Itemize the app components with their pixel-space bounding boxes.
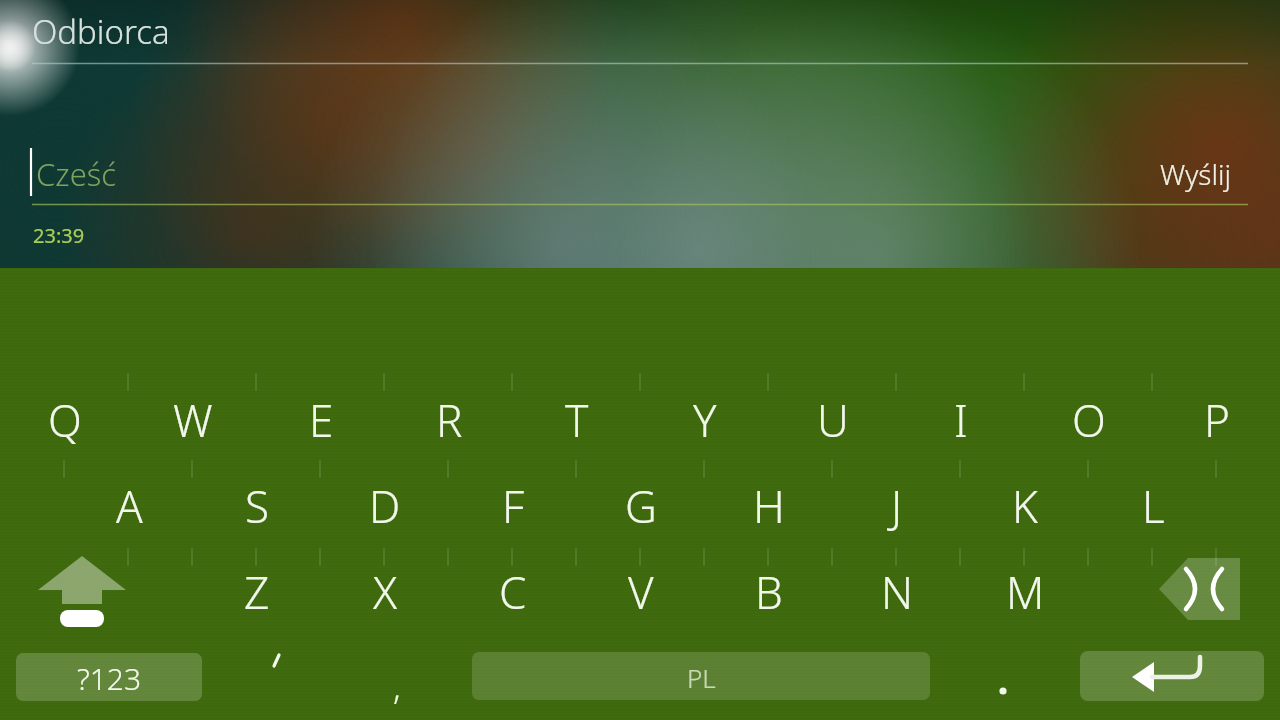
staticText: A: [116, 476, 143, 536]
button[interactable]: H: [705, 463, 833, 549]
staticText: E: [309, 390, 334, 450]
button[interactable]: Backspace: [1150, 550, 1260, 634]
staticText: L: [1142, 476, 1165, 536]
button[interactable]: W: [129, 377, 257, 463]
button[interactable]: Z: [193, 549, 321, 635]
staticText: K: [1012, 476, 1038, 536]
button[interactable]: Period: [960, 655, 1050, 711]
button[interactable]: N: [833, 549, 961, 635]
button[interactable]: V: [577, 549, 705, 635]
staticText: S: [245, 476, 270, 536]
button[interactable]: R: [385, 377, 513, 463]
button[interactable]: L: [1089, 463, 1217, 549]
staticText: O: [1072, 390, 1106, 450]
button[interactable]: O: [1025, 377, 1153, 463]
button[interactable]: C: [449, 549, 577, 635]
staticText: H: [753, 476, 785, 536]
button[interactable]: PL: [472, 652, 930, 702]
button[interactable]: T: [513, 377, 641, 463]
button[interactable]: B: [705, 549, 833, 635]
staticText: I: [954, 390, 968, 450]
staticText: D: [369, 476, 401, 536]
button[interactable]: M: [961, 549, 1089, 635]
staticText: M: [1006, 562, 1045, 622]
button[interactable]: A: [65, 463, 193, 549]
button[interactable]: Shift: [20, 550, 144, 634]
button[interactable]: P: [1153, 377, 1280, 463]
button[interactable]: J: [833, 463, 961, 549]
staticText: T: [565, 390, 589, 450]
staticText: X: [373, 562, 398, 622]
button[interactable]: ?123: [15, 652, 203, 704]
button[interactable]: Y: [641, 377, 769, 463]
button[interactable]: K: [961, 463, 1089, 549]
staticText: G: [625, 476, 657, 536]
button[interactable]: S: [193, 463, 321, 549]
staticText: U: [817, 390, 849, 450]
staticText: PL: [687, 660, 716, 695]
staticText: P: [1204, 390, 1230, 450]
staticText: Cześć: [36, 153, 117, 195]
button[interactable]: X: [321, 549, 449, 635]
button[interactable]: Cześć: [36, 150, 436, 198]
staticText: B: [755, 562, 783, 622]
staticText: C: [499, 562, 527, 622]
staticText: ,: [393, 663, 401, 709]
button[interactable]: F: [449, 463, 577, 549]
staticText: J: [891, 476, 903, 536]
button[interactable]: Q: [1, 377, 129, 463]
staticText: Wyślij: [1160, 155, 1231, 193]
button[interactable]: I: [897, 377, 1025, 463]
button[interactable]: ,: [342, 656, 452, 716]
staticText: ?123: [77, 658, 142, 699]
staticText: Q: [48, 390, 82, 450]
button[interactable]: Apostrophe: [240, 640, 320, 696]
button[interactable]: Wyślij: [1160, 150, 1256, 198]
staticText: Z: [244, 562, 270, 622]
staticText: V: [628, 562, 654, 622]
staticText: F: [502, 476, 525, 536]
staticText: N: [881, 562, 914, 622]
button[interactable]: D: [321, 463, 449, 549]
button[interactable]: Odbiorca: [32, 6, 332, 56]
button[interactable]: U: [769, 377, 897, 463]
button[interactable]: G: [577, 463, 705, 549]
staticText: 23:39: [33, 222, 85, 249]
staticText: Odbiorca: [32, 9, 170, 54]
button[interactable]: Enter: [1080, 651, 1264, 701]
staticText: W: [173, 390, 213, 450]
staticText: Y: [693, 390, 717, 450]
button[interactable]: E: [257, 377, 385, 463]
staticText: R: [436, 390, 463, 450]
